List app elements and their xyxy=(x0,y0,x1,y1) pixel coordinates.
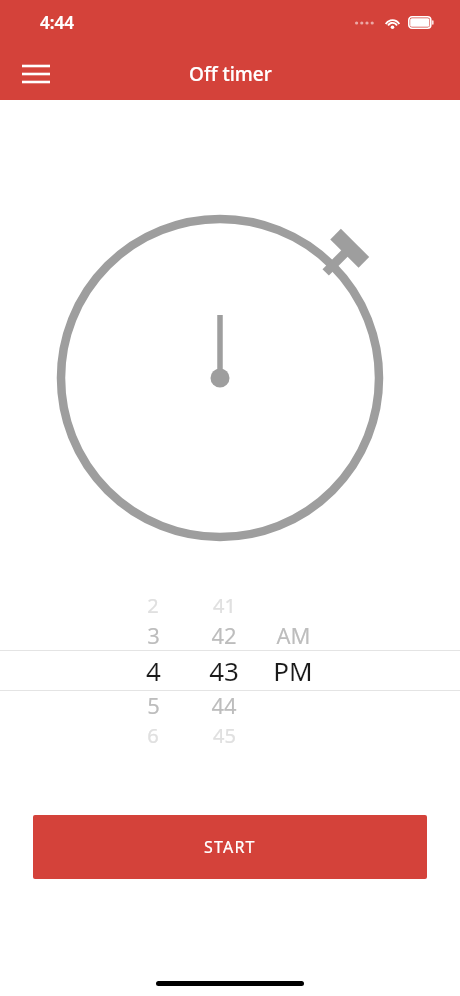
staticText: 43 xyxy=(209,653,239,688)
button[interactable]: 3 xyxy=(113,617,193,653)
button[interactable]: 43 xyxy=(184,652,264,688)
staticText: 45 xyxy=(213,722,236,749)
staticText: START xyxy=(204,836,256,858)
button[interactable]: 4 xyxy=(113,652,193,688)
staticText: 41 xyxy=(213,592,236,619)
staticText: Off timer xyxy=(189,61,272,87)
staticText: 4:44 xyxy=(40,11,74,34)
button[interactable]: 44 xyxy=(184,687,264,723)
staticText: 42 xyxy=(211,620,237,650)
button[interactable]: 41 xyxy=(184,587,264,623)
button[interactable]: AM xyxy=(253,617,333,653)
button[interactable]: 2 xyxy=(113,587,193,623)
staticText: PM xyxy=(273,653,313,688)
button[interactable]: 6 xyxy=(113,717,193,753)
button[interactable]: 5 xyxy=(113,687,193,723)
staticText: 44 xyxy=(211,690,237,720)
button[interactable]: Open navigation menu xyxy=(10,48,62,100)
button[interactable]: 42 xyxy=(184,617,264,653)
staticText: 2 xyxy=(147,592,159,619)
staticText: 4 xyxy=(146,653,161,688)
staticText: AM xyxy=(276,620,311,650)
staticText: 3 xyxy=(147,620,160,650)
staticText: 6 xyxy=(147,722,159,749)
button[interactable]: START xyxy=(33,815,427,879)
staticText: 5 xyxy=(147,690,160,720)
button[interactable]: PM xyxy=(253,652,333,688)
button[interactable]: 45 xyxy=(184,717,264,753)
